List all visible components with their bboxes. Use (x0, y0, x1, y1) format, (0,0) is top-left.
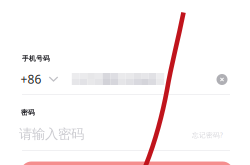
button[interactable]: 登录 (20, 161, 233, 165)
staticText: +86 (20, 71, 41, 87)
button[interactable]: 清除 (212, 69, 232, 89)
staticText: 忘记密码? (192, 131, 223, 139)
button[interactable]: +86 (20, 70, 58, 88)
staticText: 请输入密码 (19, 126, 84, 142)
button[interactable]: 忘记密码? (192, 131, 223, 139)
staticText: 密码 (21, 108, 35, 117)
staticText: 手机号码 (22, 54, 50, 63)
